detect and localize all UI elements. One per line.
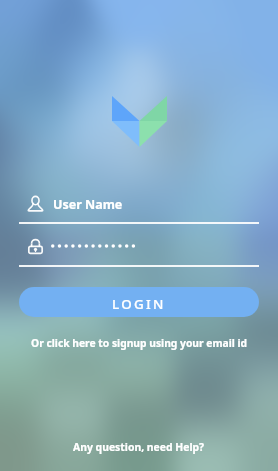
other: Password [28, 236, 43, 254]
button[interactable]: Password [19, 235, 259, 268]
staticText: User Name [53, 196, 123, 213]
button[interactable]: Any question, need Help? [67, 437, 211, 457]
button[interactable]: Or click here to signup using your email… [25, 333, 254, 353]
staticText: LOGIN [112, 295, 166, 313]
button[interactable]: User name [19, 192, 259, 225]
button[interactable]: LOGIN [19, 287, 259, 317]
other: User name [28, 196, 43, 211]
